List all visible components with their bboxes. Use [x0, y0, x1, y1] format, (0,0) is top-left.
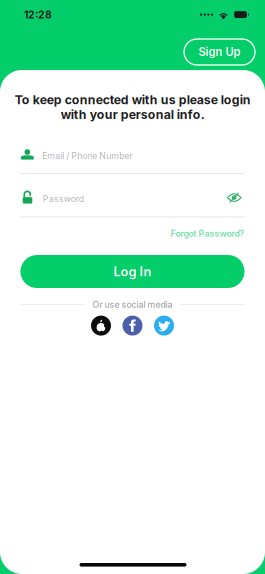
staticText: Log In: [113, 264, 151, 279]
button[interactable]: Sign Up: [184, 39, 255, 65]
button[interactable]: Show password: [227, 193, 242, 202]
button[interactable]: Log In: [20, 255, 244, 288]
staticText: Sign Up: [198, 45, 240, 59]
button[interactable]: Sign in with Apple: [91, 316, 111, 336]
button[interactable]: Sign in with Twitter: [154, 316, 174, 336]
staticText: Forgot Password?: [170, 228, 244, 239]
button[interactable]: Sign in with Facebook: [122, 316, 142, 336]
staticText: 12:28: [24, 8, 52, 21]
staticText: Or use social media: [92, 299, 172, 310]
button[interactable]: Forgot Password?: [169, 227, 244, 241]
staticText: To keep connected with us please login w…: [14, 92, 250, 122]
staticText: Email / Phone Number: [42, 151, 132, 161]
staticText: Password: [43, 193, 84, 204]
